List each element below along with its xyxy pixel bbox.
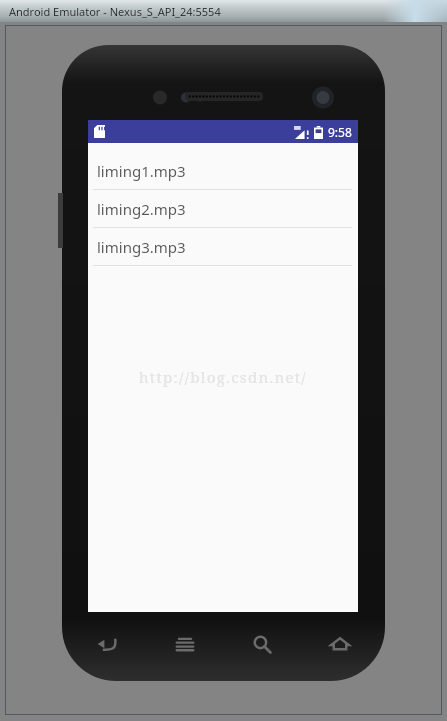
staticText: http://blog.csdn.net/ (139, 367, 307, 387)
button[interactable]: liming1.mp3 (88, 152, 358, 190)
button[interactable]: liming2.mp3 (88, 190, 358, 228)
button[interactable]: Search (239, 621, 285, 667)
staticText: liming2.mp3 (97, 199, 186, 219)
button[interactable]: Home (317, 621, 363, 667)
staticText: Android Emulator - Nexus_S_API_24:5554 (9, 4, 221, 19)
button[interactable]: liming3.mp3 (88, 228, 358, 266)
button[interactable]: Menu (162, 621, 208, 667)
staticText: 9:58 (328, 124, 352, 140)
button[interactable]: Back (84, 621, 130, 667)
staticText: liming3.mp3 (97, 237, 186, 257)
staticText: liming1.mp3 (97, 161, 186, 181)
